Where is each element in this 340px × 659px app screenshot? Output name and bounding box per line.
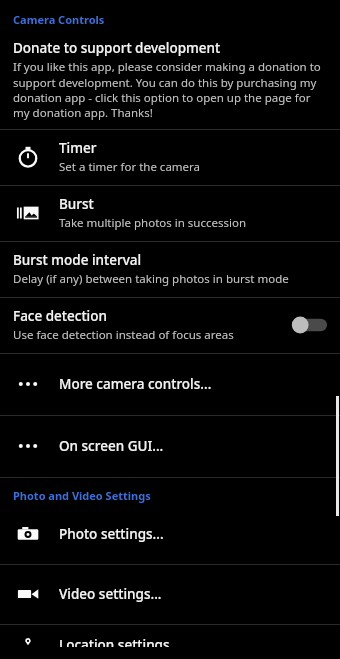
staticText: More camera controls... xyxy=(59,375,212,393)
staticText: Donate to support development xyxy=(13,39,221,57)
staticText: Use face detection instead of focus area… xyxy=(13,327,234,343)
button[interactable]: Donate to support development xyxy=(0,31,340,129)
button[interactable]: More camera controls... xyxy=(0,354,340,415)
staticText: Set a timer for the camera xyxy=(59,159,201,175)
staticText: Take multiple photos in succession xyxy=(59,215,246,231)
button[interactable]: Photo settings xyxy=(0,505,340,564)
staticText: Location settings... xyxy=(59,636,181,647)
button[interactable]: Location settings xyxy=(0,625,340,659)
staticText: Burst xyxy=(59,195,94,213)
staticText: On screen GUI... xyxy=(59,437,164,455)
staticText: Video settings... xyxy=(59,585,162,603)
button[interactable]: Timer xyxy=(0,130,340,185)
button[interactable]: Burst mode interval xyxy=(0,242,340,297)
button[interactable]: Burst xyxy=(0,186,340,241)
button[interactable]: Video settings xyxy=(0,565,340,624)
staticText: Timer xyxy=(59,139,97,157)
staticText: Delay (if any) between taking photos in … xyxy=(13,271,289,287)
staticText: Burst mode interval xyxy=(13,251,142,269)
staticText: Photo settings... xyxy=(59,525,164,543)
staticText: Photo and Video Settings xyxy=(13,488,151,503)
button[interactable]: Face detection xyxy=(0,298,340,353)
staticText: If you like this app, please consider ma… xyxy=(13,59,327,120)
staticText: Face detection xyxy=(13,307,107,325)
staticText: Camera Controls xyxy=(13,12,105,27)
button[interactable]: On screen GUI... xyxy=(0,416,340,477)
button[interactable]: Face detection toggle xyxy=(291,315,327,335)
